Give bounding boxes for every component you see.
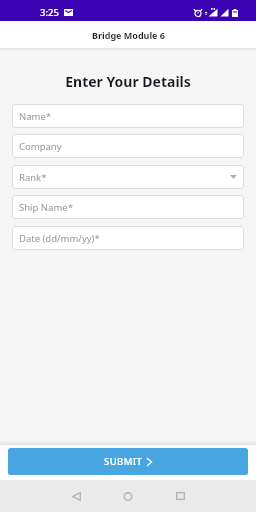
staticText: Name* [19,110,52,123]
button[interactable]: Recents [162,480,198,512]
staticText: Date (dd/mm/yy)* [19,232,100,245]
staticText: Rank* [19,171,47,184]
button[interactable]: Back [58,480,94,512]
staticText: SUBMIT [104,455,143,468]
staticText: Company [19,140,62,153]
button[interactable]: Home [110,480,146,512]
button[interactable]: SUBMIT [8,448,248,475]
staticText: 3:25 [40,6,60,19]
staticText: Bridge Module 6 [92,29,165,41]
button[interactable]: Company [12,134,244,158]
button[interactable]: Date (dd/mm/yy)* [12,226,244,250]
button[interactable]: Rank* [12,165,244,189]
staticText: Ship Name* [19,201,73,214]
button[interactable]: Name* [12,104,244,128]
button[interactable]: Ship Name* [12,195,244,219]
staticText: Enter Your Details [0,72,256,91]
